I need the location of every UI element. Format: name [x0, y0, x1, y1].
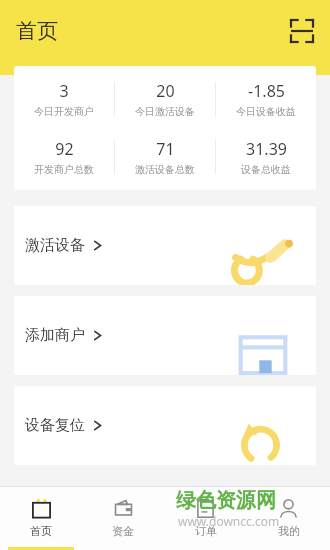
staticText: 我的	[278, 524, 300, 538]
button[interactable]: 订单	[164, 487, 247, 550]
staticText: 20	[156, 80, 175, 102]
staticText: 订单	[195, 524, 217, 538]
button[interactable]: 添加商户	[14, 296, 316, 375]
staticText: 首页	[30, 524, 52, 538]
staticText: 31.39	[246, 138, 287, 160]
button[interactable]: Scan QR code	[288, 17, 316, 45]
staticText: 设备复位	[25, 416, 85, 435]
staticText: 今日设备收益	[236, 105, 296, 118]
staticText: 71	[156, 138, 175, 160]
button[interactable]: 资金	[82, 487, 164, 550]
staticText: 激活设备总数	[135, 163, 195, 176]
button[interactable]: 首页	[0, 487, 82, 550]
staticText: -1.85	[248, 80, 285, 102]
staticText: 92	[55, 138, 74, 160]
staticText: 设备总收益	[241, 163, 291, 176]
button[interactable]: 设备复位	[14, 386, 316, 465]
staticText: 今日开发商户	[34, 105, 94, 118]
button[interactable]: 激活设备	[14, 206, 316, 285]
staticText: www.downcc.com	[178, 513, 280, 529]
staticText: 绿色资源网	[176, 488, 276, 513]
staticText: 今日激活设备	[135, 105, 195, 118]
staticText: 资金	[112, 524, 134, 538]
staticText: 添加商户	[25, 326, 85, 345]
staticText: 开发商户总数	[34, 163, 94, 176]
staticText: 激活设备	[25, 236, 85, 255]
staticText: 3	[59, 80, 69, 102]
button[interactable]: 我的	[247, 487, 330, 550]
staticText: 首页	[16, 18, 58, 44]
